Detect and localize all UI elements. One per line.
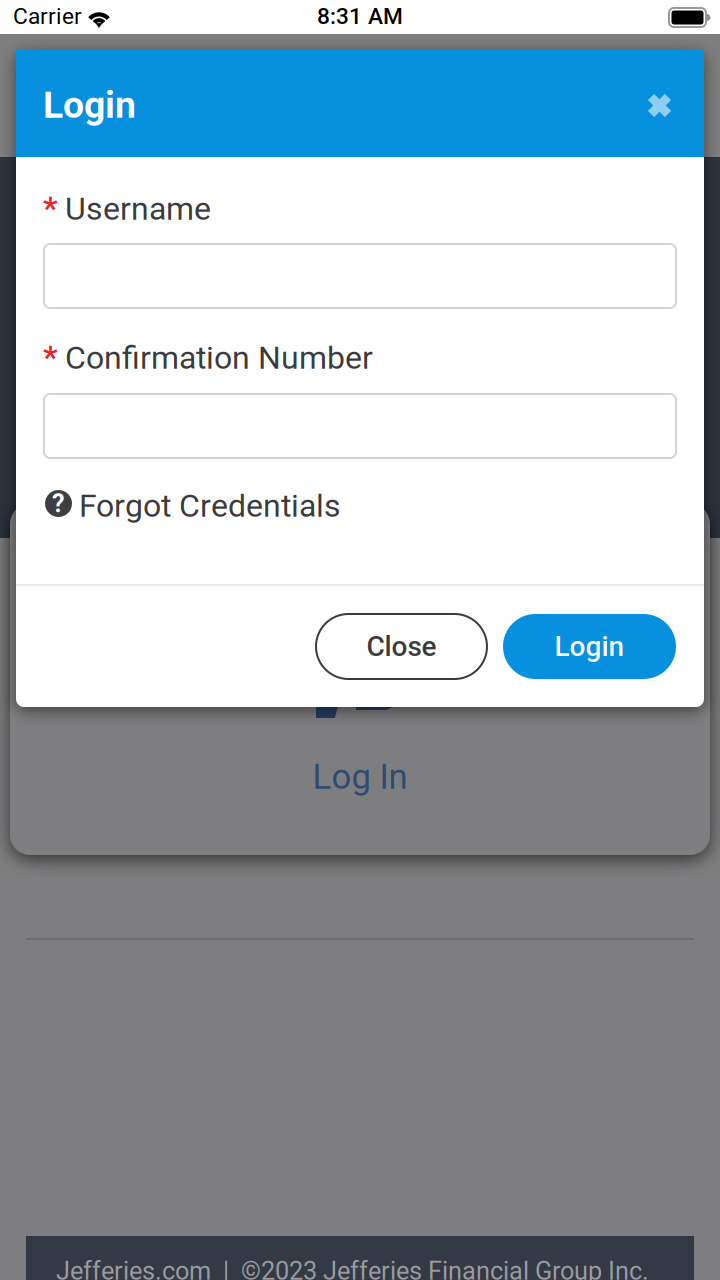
staticText: *	[43, 338, 58, 372]
staticText: ?	[52, 489, 65, 518]
staticText: Forgot Credentials	[79, 487, 341, 521]
button[interactable]: Login	[503, 614, 676, 679]
staticText: Close	[366, 630, 436, 663]
button[interactable]: Close	[316, 614, 487, 679]
staticText: Login	[554, 630, 624, 663]
staticText: *	[43, 189, 58, 223]
button[interactable]: ?	[45, 487, 485, 521]
staticText: Log In	[312, 757, 407, 797]
staticText: Jefferies.com | ©2023 Jefferies Financia…	[56, 1256, 649, 1280]
staticText: Carrier	[13, 3, 82, 29]
staticText: Login	[43, 83, 136, 127]
staticText: Confirmation Number	[65, 339, 373, 373]
button[interactable]: Close	[637, 82, 682, 127]
staticText: Username	[65, 190, 211, 224]
staticText: 8:31 AM	[317, 3, 403, 29]
